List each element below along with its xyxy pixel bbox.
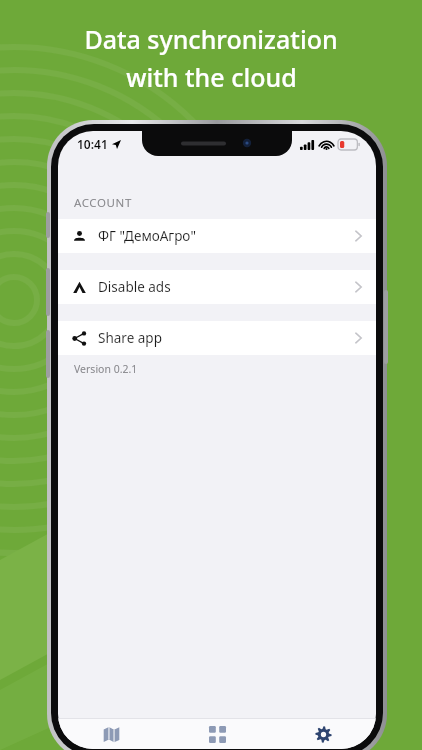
button[interactable]: Map [58, 719, 164, 749]
button[interactable]: Settings [270, 719, 376, 749]
staticText: 10:41 [77, 136, 108, 152]
staticText: ACCOUNT [74, 195, 132, 211]
staticText: Version 0.2.1 [74, 362, 138, 376]
button[interactable]: Share app [58, 321, 376, 355]
button[interactable]: Disable ads [58, 270, 376, 304]
staticText: ФГ "ДемоАгро" [98, 227, 196, 245]
staticText: Disable ads [98, 278, 171, 296]
button[interactable]: Fields [164, 719, 270, 749]
button[interactable]: ФГ "ДемоАгро" [58, 219, 376, 253]
staticText: Share app [98, 329, 162, 347]
staticText: with the cloud [126, 60, 297, 94]
staticText: Data synchronization [84, 22, 338, 56]
